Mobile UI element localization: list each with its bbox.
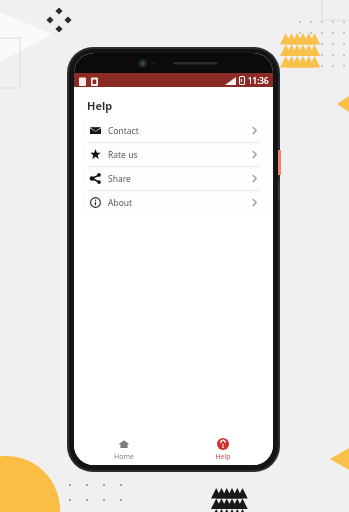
button[interactable]: About [81, 191, 266, 214]
button[interactable]: Contact [81, 119, 266, 143]
staticText: About [108, 197, 133, 209]
staticText: Help [215, 452, 231, 462]
staticText: 11:36 [248, 75, 269, 86]
button[interactable]: Help [173, 434, 273, 465]
button[interactable]: Share [81, 167, 266, 191]
staticText: Home [114, 452, 134, 462]
staticText: Rate us [108, 149, 138, 161]
staticText: Contact [108, 125, 139, 137]
button[interactable]: Home [74, 434, 173, 465]
button[interactable]: Rate us [81, 143, 266, 167]
staticText: Help [87, 98, 113, 113]
staticText: Share [108, 173, 131, 185]
